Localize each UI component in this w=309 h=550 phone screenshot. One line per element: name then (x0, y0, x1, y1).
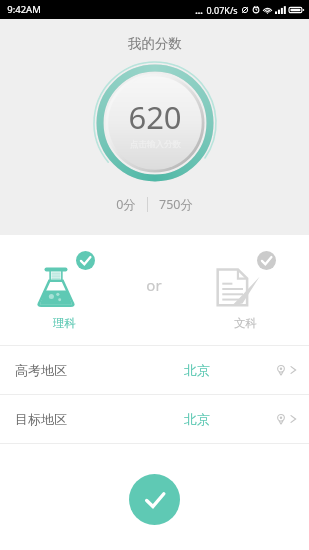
staticText: 0.07K/s (206, 4, 238, 16)
staticText: 高考地区 (15, 362, 67, 378)
staticText: 目标地区 (15, 411, 67, 427)
staticText: 文科 (234, 316, 257, 330)
staticText: 点击输入分数 (130, 139, 181, 150)
staticText: 620 (128, 96, 182, 138)
staticText: ... (195, 4, 203, 16)
staticText: 北京 (184, 362, 210, 378)
button[interactable]: 确定 (129, 474, 180, 525)
staticText: 北京 (184, 411, 210, 427)
button[interactable]: 文科 (214, 251, 276, 330)
button[interactable]: 输入分数 (93, 61, 217, 185)
button[interactable]: 高考地区 (0, 346, 309, 394)
staticText: 我的分数 (128, 35, 182, 52)
staticText: or (146, 275, 162, 295)
staticText: 750分 (159, 196, 193, 213)
staticText: 0分 (116, 196, 136, 213)
staticText: 9:42AM (7, 3, 41, 16)
button[interactable]: 理科 (33, 251, 95, 330)
button[interactable]: 目标地区 (0, 395, 309, 443)
staticText: 理科 (53, 316, 76, 330)
